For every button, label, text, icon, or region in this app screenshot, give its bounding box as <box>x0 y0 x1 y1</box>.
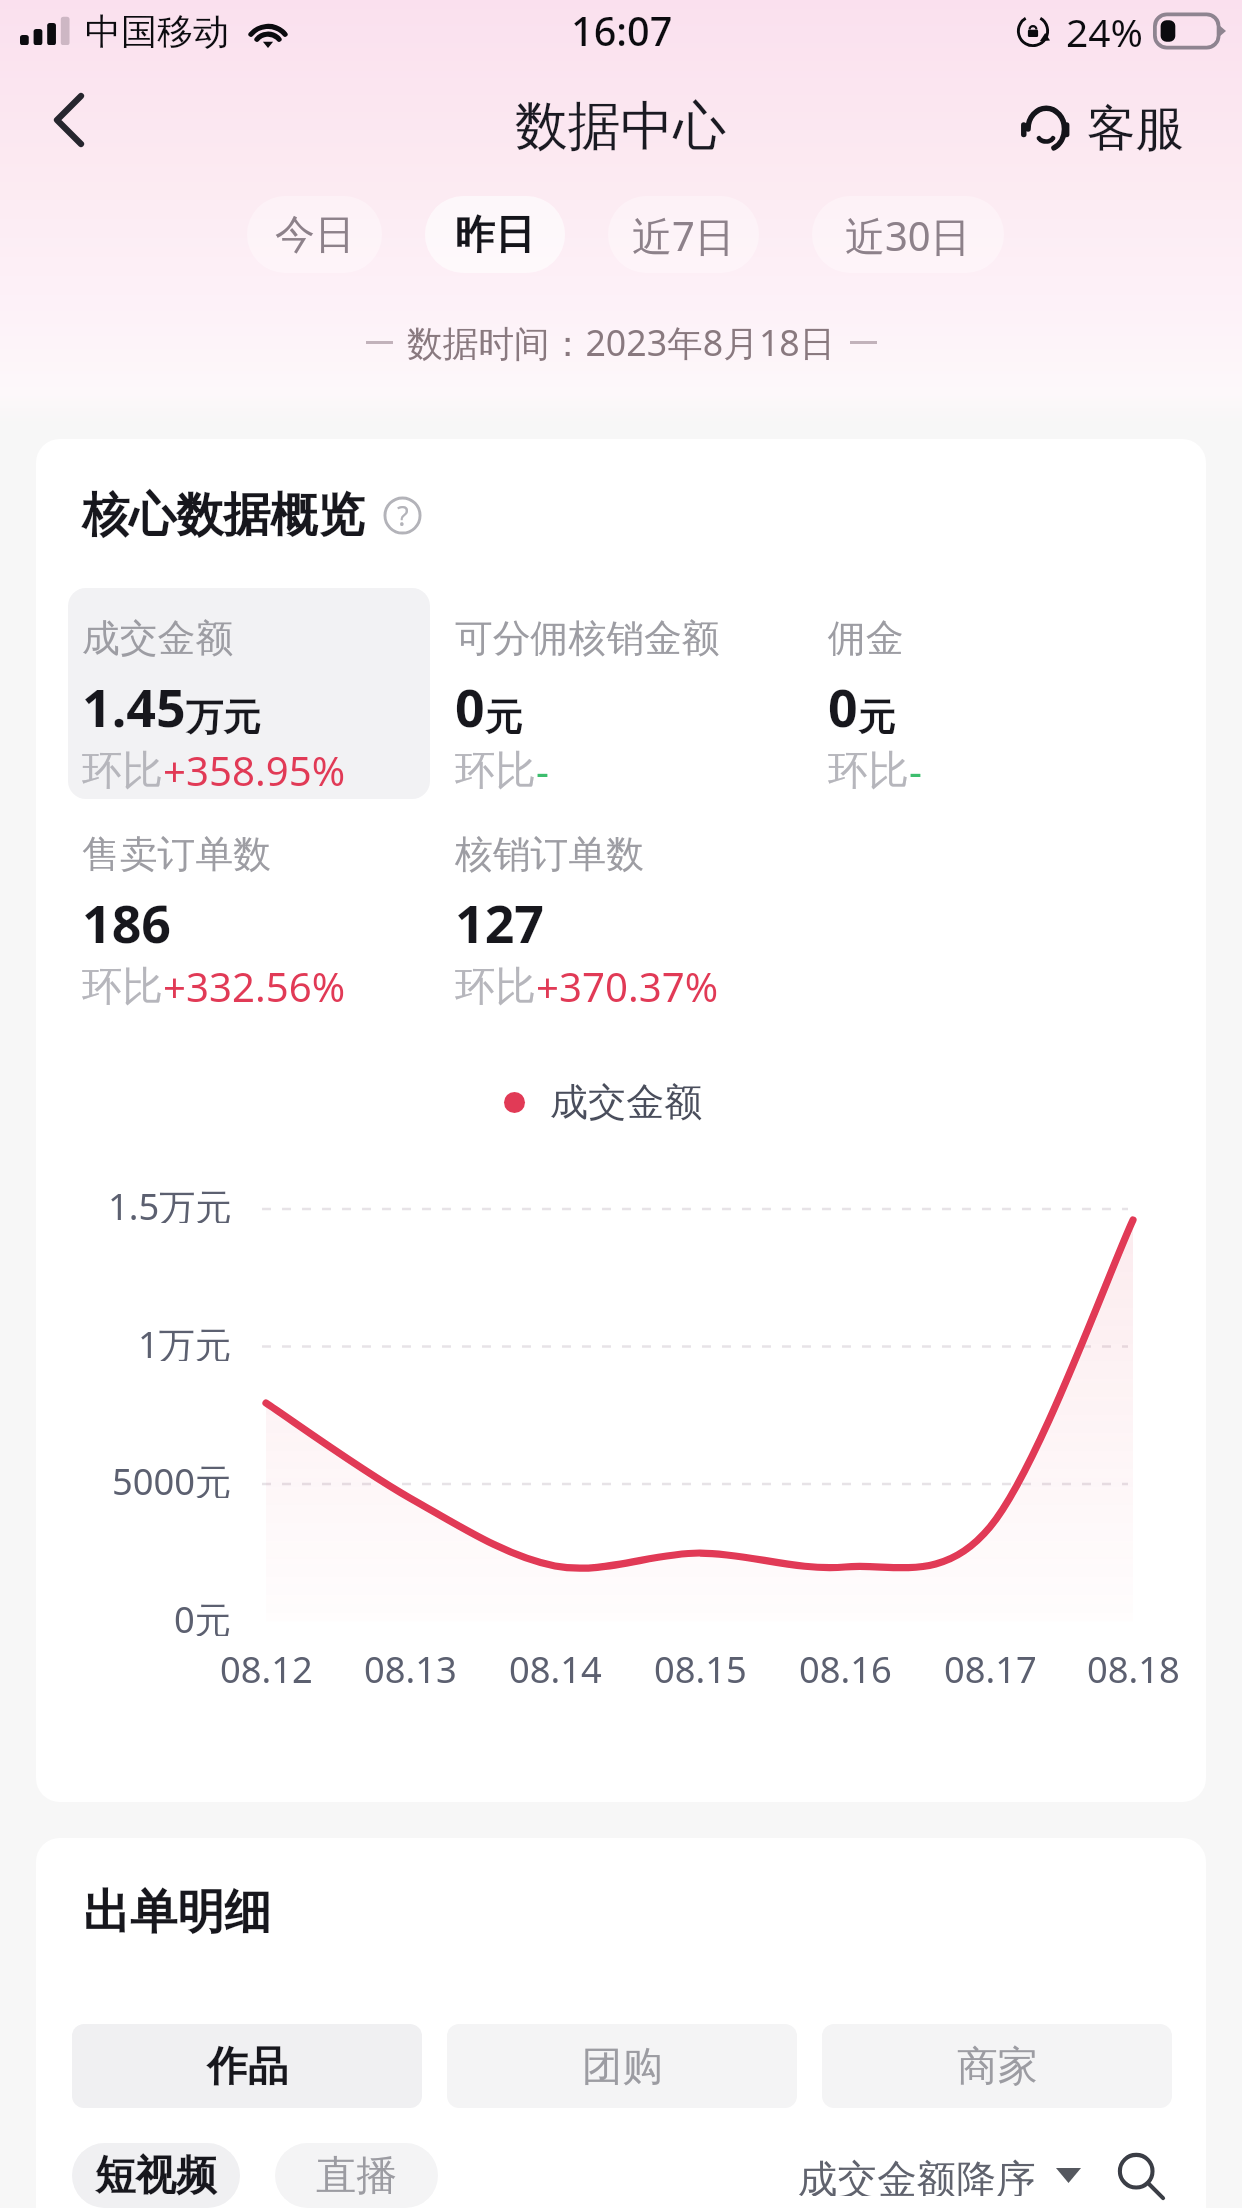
staticText: 5000元 <box>112 1456 232 1498</box>
staticText: 186 <box>82 888 172 959</box>
staticText: 08.17 <box>944 1644 1037 1693</box>
staticText: ? <box>397 497 409 534</box>
staticText: 昨日 <box>455 210 535 260</box>
staticText: 08.16 <box>799 1644 892 1693</box>
button[interactable]: 返回 <box>39 81 99 159</box>
button[interactable]: 搜索 <box>1117 2152 1165 2200</box>
staticText: 08.12 <box>220 1644 313 1693</box>
staticText: 0 <box>828 672 858 743</box>
staticText: 0元 <box>174 1594 232 1636</box>
button[interactable]: 成交金额降序 <box>798 2143 1081 2208</box>
button[interactable]: 商家 <box>822 2024 1172 2108</box>
staticText: 16:07 <box>571 4 673 58</box>
staticText: +370.37% <box>536 959 719 1014</box>
staticText: - <box>909 743 922 798</box>
staticText: 环比 <box>455 745 536 796</box>
staticText: 元 <box>858 694 896 741</box>
staticText: 环比 <box>82 961 163 1012</box>
staticText: 出单明细 <box>83 1883 272 1942</box>
staticText: 核心数据概览 <box>82 486 365 545</box>
staticText: 今日 <box>275 210 355 260</box>
staticText: 数据中心 <box>515 93 727 160</box>
staticText: 中国移动 <box>85 9 229 54</box>
staticText: 08.13 <box>364 1644 457 1693</box>
button[interactable]: 说明 <box>383 496 422 535</box>
staticText: 08.14 <box>509 1644 602 1693</box>
button[interactable]: 团购 <box>447 2024 797 2108</box>
button[interactable]: 近30日 <box>812 196 1004 273</box>
staticText: 08.15 <box>654 1644 747 1693</box>
button[interactable]: 昨日 <box>425 196 565 273</box>
staticText: 08.18 <box>1087 1644 1180 1693</box>
button[interactable]: 佣金 <box>814 588 1176 799</box>
button[interactable]: 客服 <box>1014 89 1191 168</box>
button[interactable]: 作品 <box>72 2024 422 2108</box>
staticText: 1.5万元 <box>108 1181 232 1223</box>
staticText: 数据时间：2023年8月18日 <box>407 318 836 367</box>
staticText: 直播 <box>316 2150 397 2201</box>
staticText: 核销订单数 <box>455 831 644 879</box>
staticText: - <box>536 743 549 798</box>
staticText: 客服 <box>1087 98 1185 159</box>
staticText: 万元 <box>186 694 261 741</box>
button[interactable]: 直播 <box>275 2143 438 2208</box>
button[interactable]: 可分佣核销金额 <box>441 588 803 799</box>
staticText: 可分佣核销金额 <box>455 615 720 663</box>
staticText: 团购 <box>582 2041 663 2092</box>
staticText: 24% <box>1066 5 1144 58</box>
staticText: 短视频 <box>95 2150 217 2201</box>
button[interactable]: 短视频 <box>72 2143 240 2208</box>
staticText: 127 <box>455 888 545 959</box>
staticText: 1.45 <box>82 672 186 743</box>
button[interactable]: 今日 <box>247 196 382 273</box>
staticText: 环比 <box>455 961 536 1012</box>
staticText: 近30日 <box>845 208 971 262</box>
staticText: 元 <box>485 694 523 741</box>
staticText: +358.95% <box>163 743 346 798</box>
staticText: 成交金额 <box>550 1078 703 1126</box>
staticText: 商家 <box>957 2041 1038 2092</box>
staticText: 售卖订单数 <box>82 831 271 879</box>
button[interactable]: 近7日 <box>608 196 759 273</box>
staticText: 作品 <box>207 2041 288 2092</box>
staticText: 环比 <box>828 745 909 796</box>
staticText: 1万元 <box>138 1319 232 1361</box>
button[interactable]: 售卖订单数 <box>68 804 430 1015</box>
staticText: 0 <box>455 672 485 743</box>
button[interactable]: 成交金额 <box>68 588 430 799</box>
staticText: 佣金 <box>828 615 904 663</box>
staticText: 近7日 <box>632 208 735 262</box>
button[interactable]: 核销订单数 <box>441 804 803 1015</box>
staticText: +332.56% <box>163 959 346 1014</box>
staticText: 环比 <box>82 745 163 796</box>
staticText: 成交金额降序 <box>798 2155 1036 2196</box>
staticText: 成交金额 <box>82 615 234 663</box>
